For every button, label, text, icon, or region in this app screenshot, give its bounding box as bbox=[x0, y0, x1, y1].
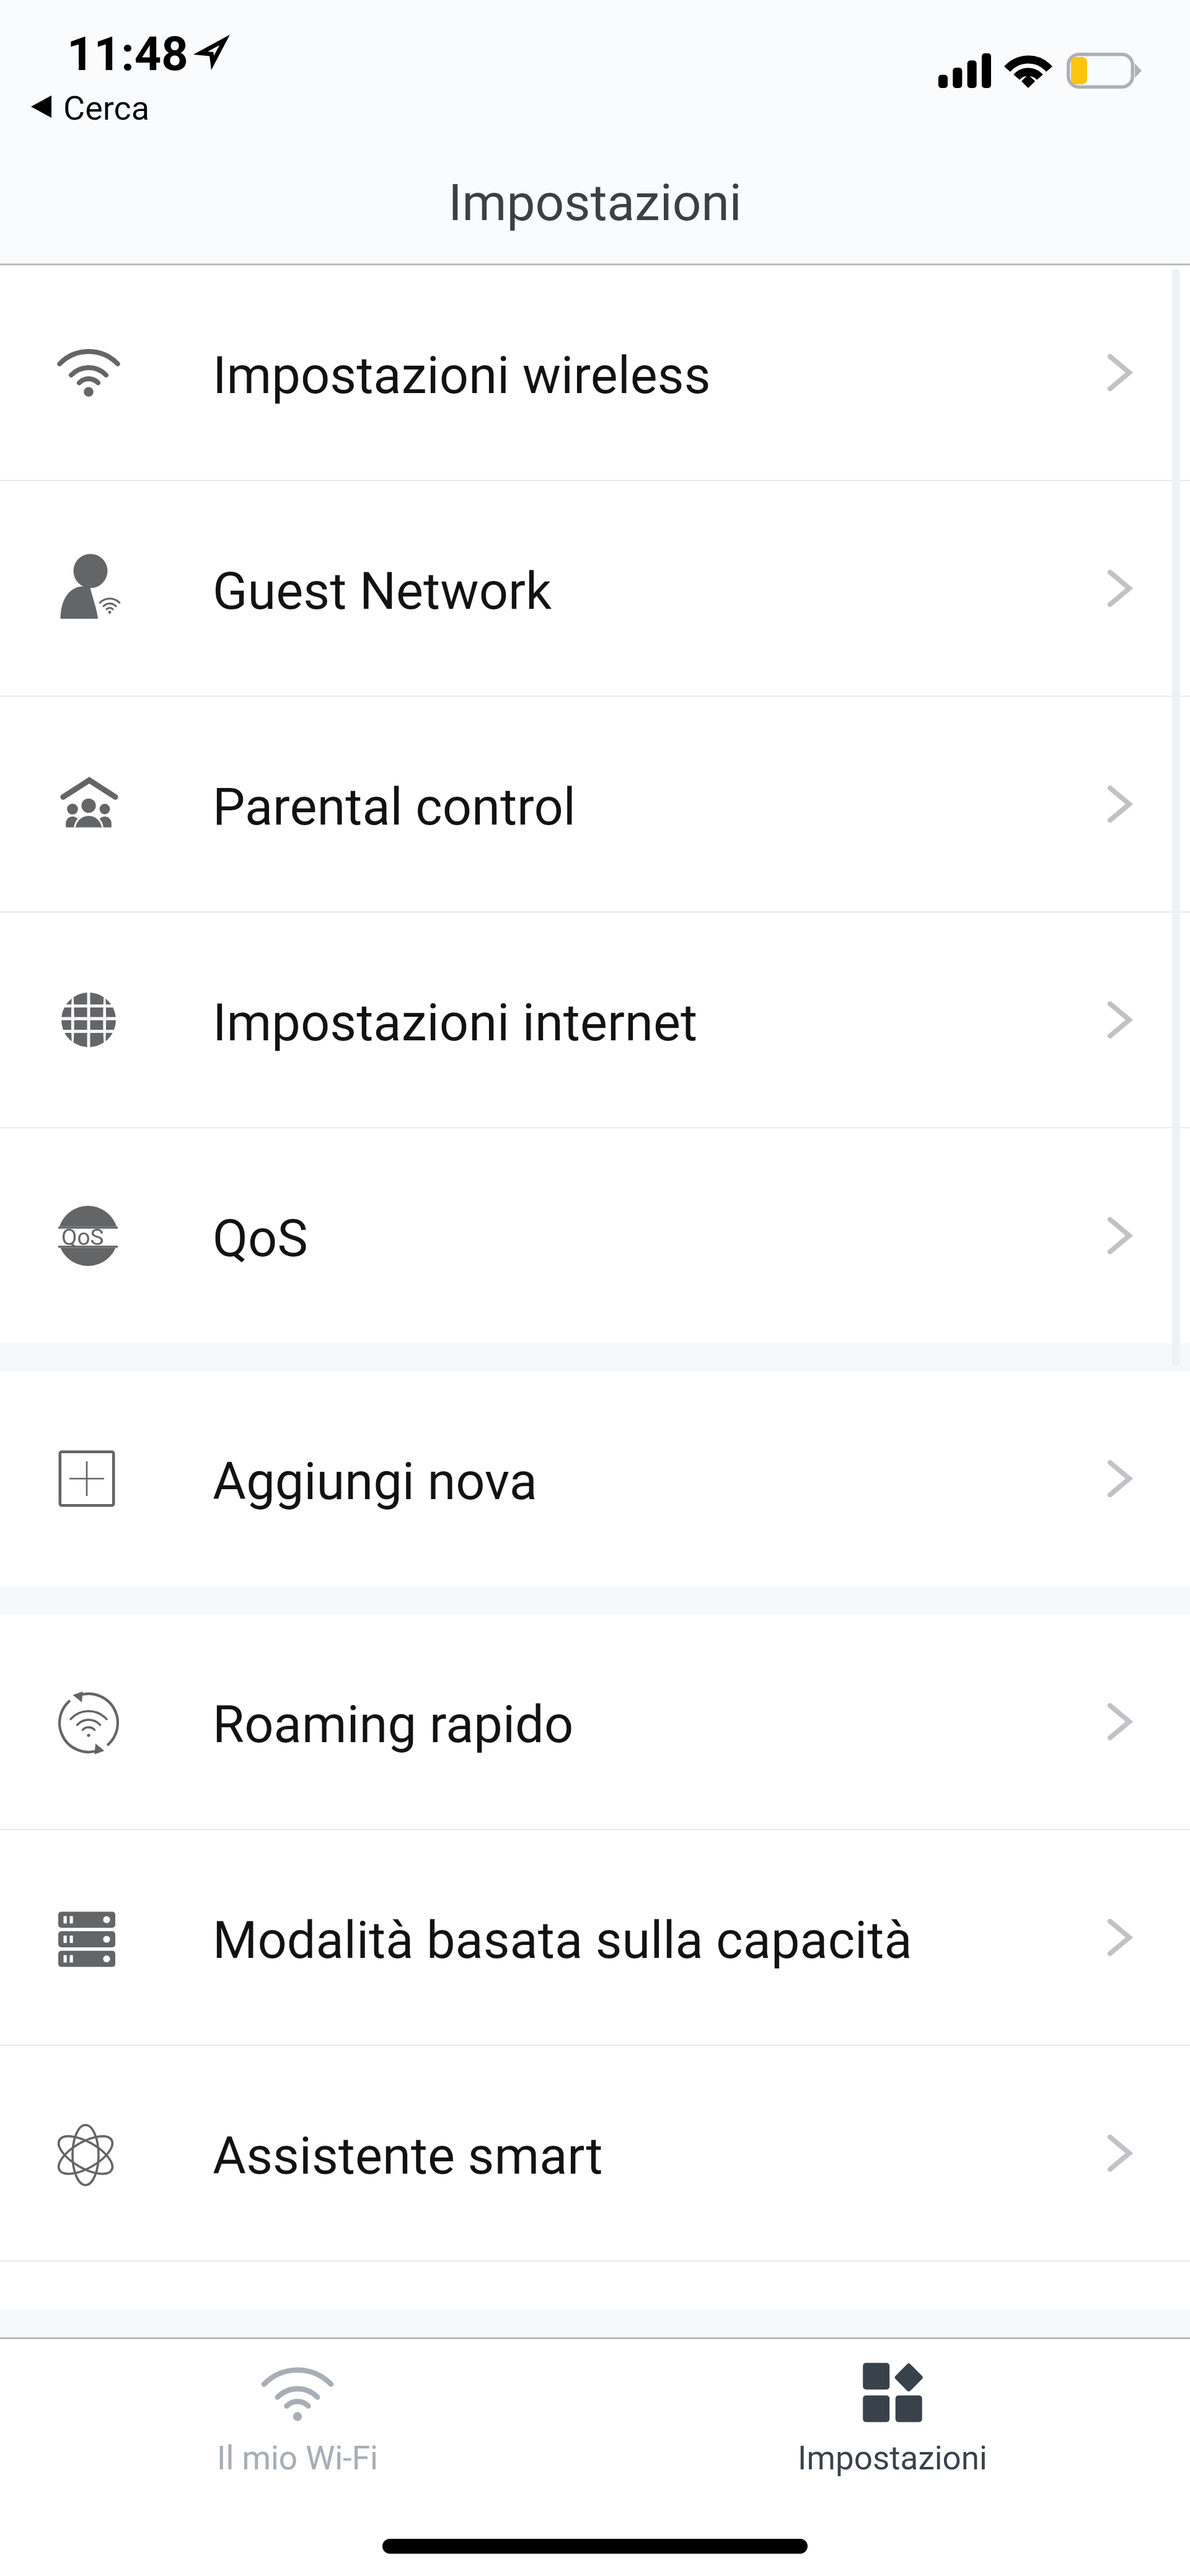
button[interactable]: Il mio Wi-Fi bbox=[0, 2339, 595, 2477]
staticText: QoS bbox=[61, 1224, 104, 1250]
other: Impostazioni bbox=[846, 2361, 939, 2423]
button[interactable]: Impostazioni internet bbox=[0, 913, 1190, 1127]
other: Il mio Wi-Fi bbox=[251, 2361, 344, 2423]
button[interactable]: QoS bbox=[0, 1128, 1190, 1343]
staticText: Parental control bbox=[213, 777, 576, 837]
staticText: Aggiungi nova bbox=[213, 1451, 537, 1512]
button[interactable]: Guest Network bbox=[0, 481, 1190, 696]
staticText: Roaming rapido bbox=[213, 1694, 574, 1755]
staticText: Cerca bbox=[63, 89, 150, 128]
button[interactable]: Roaming rapido bbox=[0, 1614, 1190, 1829]
staticText: Modalità basata sulla capacità bbox=[213, 1910, 912, 1970]
staticText: Impostazioni bbox=[798, 2439, 987, 2477]
staticText: Assistente smart bbox=[213, 2126, 603, 2186]
button[interactable]: Impostazioni bbox=[595, 2339, 1190, 2477]
staticText: 11:48 bbox=[67, 26, 188, 81]
staticText: Impostazioni wireless bbox=[213, 345, 711, 405]
button[interactable]: Impostazioni wireless bbox=[0, 265, 1190, 480]
button[interactable]: Assistente smart bbox=[0, 2046, 1190, 2260]
staticText: Il mio Wi-Fi bbox=[217, 2439, 378, 2477]
button[interactable]: Modalità basata sulla capacità bbox=[0, 1830, 1190, 2045]
staticText: Impostazioni bbox=[0, 173, 1190, 232]
button[interactable]: Aggiungi nova bbox=[0, 1371, 1190, 1586]
staticText: Impostazioni internet bbox=[213, 993, 698, 1053]
staticText: Guest Network bbox=[213, 561, 552, 621]
staticText: QoS bbox=[213, 1208, 308, 1268]
button[interactable]: Parental control bbox=[0, 697, 1190, 911]
